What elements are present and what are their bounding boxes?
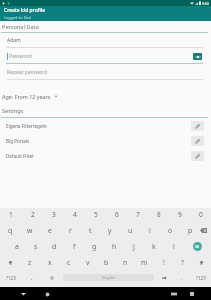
staticText: Adam (7, 37, 21, 44)
button[interactable]: Home (42, 289, 52, 299)
staticText: 5 (94, 210, 98, 219)
button[interactable]: k (144, 238, 164, 254)
button[interactable]: 8 (148, 206, 169, 222)
staticText: 7 (136, 210, 140, 219)
button[interactable]: u (120, 222, 140, 238)
button[interactable]: 9 (169, 206, 190, 222)
staticText: Default Filter (6, 153, 34, 159)
button[interactable]: y (100, 222, 120, 238)
button[interactable]: Show password (193, 53, 202, 60)
button[interactable]: f (64, 238, 84, 254)
button[interactable]: Hide keyboard (18, 289, 28, 299)
button[interactable]: Input settings (42, 270, 62, 285)
button[interactable]: Recents (187, 289, 197, 299)
staticText: . (181, 274, 183, 282)
button[interactable]: Next field (155, 270, 173, 285)
button[interactable]: Shift (192, 254, 211, 270)
button[interactable]: j (124, 238, 144, 254)
staticText: o (168, 226, 173, 235)
button[interactable]: Password (0, 48, 211, 64)
button[interactable]: ? (173, 254, 192, 270)
button[interactable]: h (104, 238, 124, 254)
staticText: 9:04 (202, 1, 209, 6)
staticText: n (123, 258, 128, 267)
staticText: f (73, 242, 76, 251)
staticText: Settings (2, 107, 24, 115)
button[interactable]: r (60, 222, 80, 238)
button[interactable]: Adam (0, 33, 211, 48)
staticText: 1 (9, 210, 13, 219)
button[interactable]: ! (154, 254, 173, 270)
button[interactable]: 7 (127, 206, 148, 222)
button[interactable]: Edit Default Filter (191, 151, 204, 161)
staticText: Create kid profile (4, 7, 46, 14)
button[interactable]: s (26, 238, 45, 254)
button[interactable]: 4 (64, 206, 85, 222)
button[interactable]: Repeat password (0, 64, 211, 80)
button[interactable]: 6 (106, 206, 127, 222)
staticText: Eigene Filterregeln (6, 123, 47, 129)
staticText: English (102, 275, 115, 280)
staticText: y (108, 226, 112, 235)
button[interactable]: ?123 (0, 270, 22, 285)
button[interactable]: o (160, 222, 180, 238)
button[interactable]: ?123 (190, 270, 211, 285)
button[interactable]: Eigene Filterregeln (0, 118, 211, 133)
staticText: Personal Data (2, 23, 39, 31)
button[interactable]: v (78, 254, 97, 270)
staticText: d (52, 242, 57, 251)
button[interactable]: Switch keyboard (169, 289, 179, 299)
staticText: x (48, 258, 52, 267)
button[interactable]: c (59, 254, 78, 270)
button[interactable]: Edit Eigene Filterregeln (191, 121, 204, 131)
button[interactable]: n (116, 254, 135, 270)
button[interactable]: 5 (85, 206, 106, 222)
button[interactable]: , (22, 270, 42, 285)
button[interactable]: p (180, 222, 200, 238)
button[interactable]: Age: From 12 years (0, 80, 211, 107)
button[interactable]: t (80, 222, 100, 238)
staticText: 0 (199, 210, 203, 219)
staticText: Password (9, 53, 32, 60)
button[interactable]: 0 (190, 206, 211, 222)
button[interactable]: Default Filter (0, 148, 211, 163)
button[interactable]: i (140, 222, 160, 238)
staticText: 2 (31, 210, 35, 219)
staticText: m (141, 258, 148, 267)
staticText: t (89, 226, 92, 235)
staticText: v (86, 258, 90, 267)
staticText: e (48, 226, 52, 235)
staticText: b (104, 258, 109, 267)
button[interactable]: Shift (0, 254, 20, 270)
button[interactable]: l (164, 238, 184, 254)
staticText: l (173, 242, 175, 251)
button[interactable]: m (135, 254, 154, 270)
staticText: Logged in: Dad (4, 15, 31, 20)
staticText: Big Portals (6, 138, 30, 144)
button[interactable]: d (45, 238, 64, 254)
staticText: 6 (115, 210, 119, 219)
staticText: a (15, 242, 19, 251)
button[interactable]: 2 (22, 206, 43, 222)
button[interactable]: w (20, 222, 40, 238)
button[interactable]: English (63, 274, 154, 281)
button[interactable]: e (40, 222, 60, 238)
button[interactable]: b (97, 254, 116, 270)
staticText: 4 (73, 210, 77, 219)
button[interactable]: a (7, 238, 26, 254)
button[interactable]: z (20, 254, 40, 270)
staticText: , (31, 274, 33, 282)
button[interactable]: 3 (43, 206, 64, 222)
button[interactable]: Backspace (200, 222, 211, 238)
button[interactable]: 1 (0, 206, 22, 222)
button[interactable]: q (0, 222, 20, 238)
staticText: ?123 (196, 275, 206, 281)
button[interactable]: g (84, 238, 104, 254)
staticText: s (34, 242, 38, 251)
staticText: ! (163, 258, 165, 267)
button[interactable]: Enter (184, 238, 211, 254)
button[interactable]: x (40, 254, 59, 270)
button[interactable]: Edit Big Portals (191, 136, 204, 146)
button[interactable]: Big Portals (0, 133, 211, 148)
